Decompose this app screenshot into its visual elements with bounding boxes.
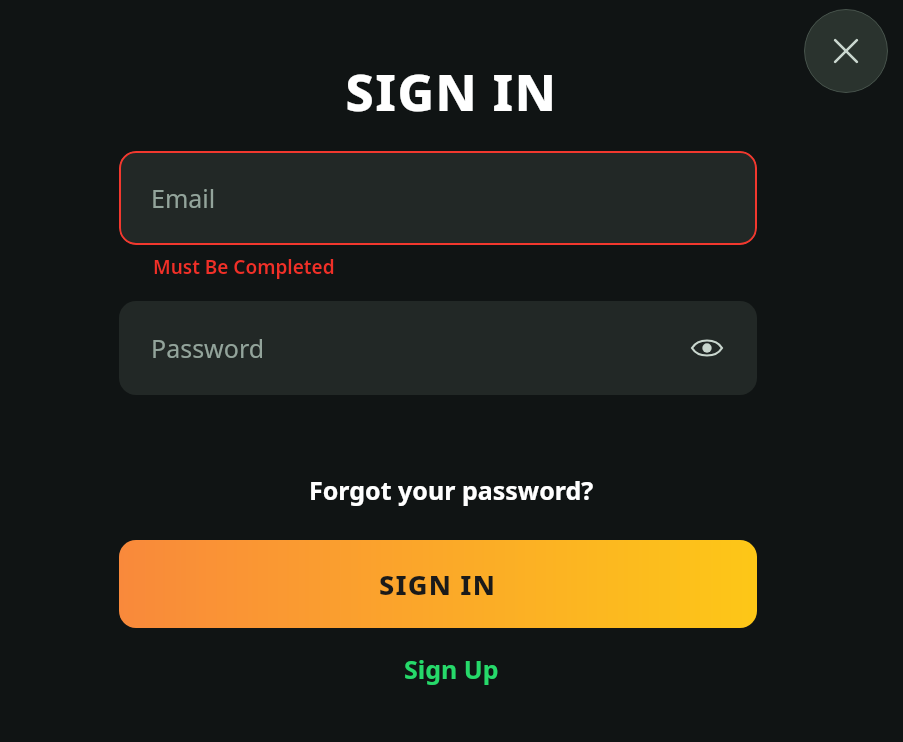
button[interactable]: Sign Up [394,648,509,690]
staticText: Password [151,331,265,365]
staticText: Email [151,181,216,215]
staticText: SIGN IN [379,566,497,603]
button[interactable]: Show password [689,330,725,366]
staticText: Sign Up [404,652,499,686]
staticText: Forgot your password? [309,473,594,507]
button[interactable]: Forgot your password? [299,469,604,511]
button[interactable]: Close [804,9,888,93]
button[interactable]: Password [119,301,757,395]
staticText: Must Be Completed [153,254,335,280]
staticText: SIGN IN [0,58,903,126]
button[interactable]: SIGN IN [119,540,757,628]
button[interactable]: Email [119,151,757,245]
